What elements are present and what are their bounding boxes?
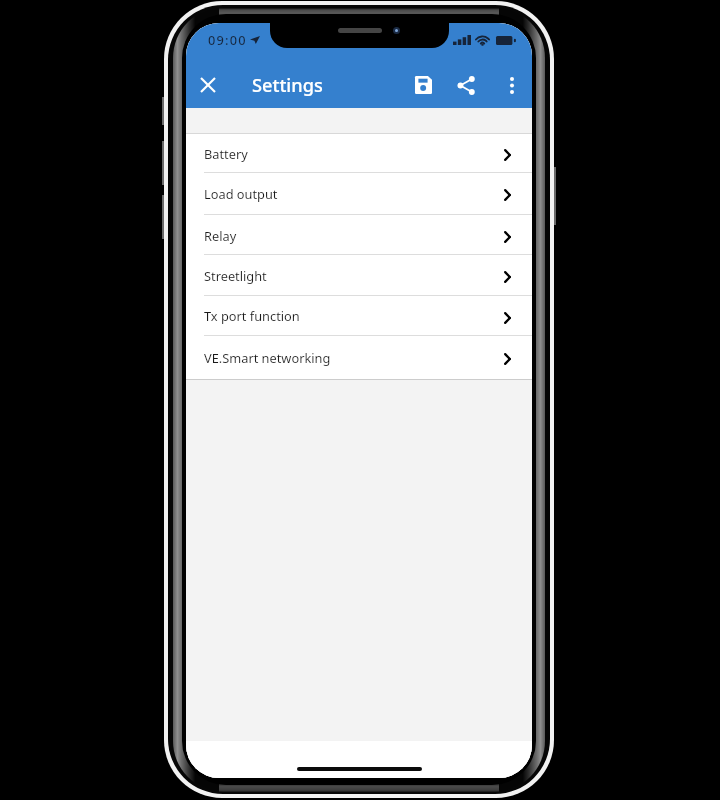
- button[interactable]: VE.Smart networking: [186, 336, 532, 378]
- button[interactable]: Streetlight: [186, 255, 532, 295]
- button[interactable]: More options: [492, 65, 532, 105]
- staticText: Streetlight: [204, 267, 267, 284]
- staticText: VE.Smart networking: [204, 349, 331, 366]
- button[interactable]: Share: [446, 65, 486, 105]
- staticText: Tx port function: [204, 307, 300, 324]
- button[interactable]: Tx port function: [186, 296, 532, 335]
- button[interactable]: Battery: [186, 134, 532, 172]
- staticText: Settings: [252, 73, 323, 98]
- staticText: Relay: [204, 227, 237, 244]
- button[interactable]: Load output: [186, 173, 532, 213]
- button[interactable]: Relay: [186, 215, 532, 255]
- staticText: Load output: [204, 185, 278, 202]
- staticText: 09:00: [208, 31, 247, 48]
- button[interactable]: Save: [403, 65, 443, 105]
- button[interactable]: Close: [188, 65, 228, 105]
- staticText: Battery: [204, 145, 248, 162]
